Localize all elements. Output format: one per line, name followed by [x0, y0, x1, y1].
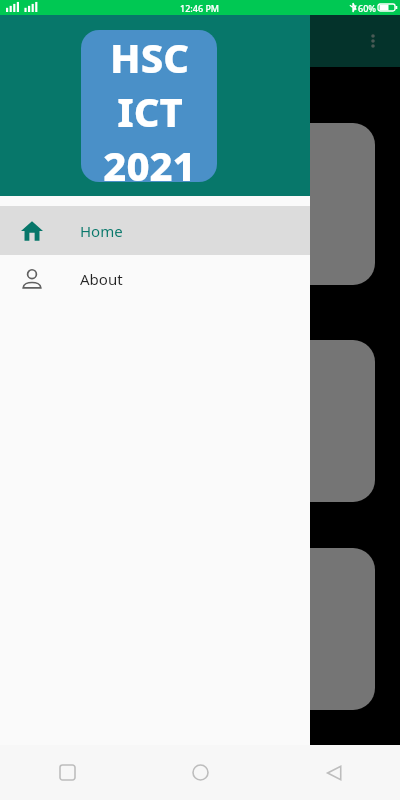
- button[interactable]: Card: [17, 123, 375, 285]
- staticText: 2021: [103, 138, 196, 182]
- button[interactable]: About: [0, 255, 310, 303]
- button[interactable]: More options: [356, 24, 390, 58]
- staticText: HSC: [110, 30, 189, 84]
- staticText: About: [80, 269, 123, 289]
- staticText: Home: [80, 221, 123, 241]
- staticText: 60%: [358, 2, 376, 14]
- button[interactable]: Card: [17, 548, 375, 710]
- button[interactable]: Home: [0, 206, 310, 255]
- button[interactable]: Recents: [0, 745, 134, 800]
- button[interactable]: Card: [17, 340, 375, 502]
- button[interactable]: Back: [267, 745, 400, 800]
- staticText: 12:46 PM: [180, 2, 220, 14]
- button[interactable]: Home: [134, 745, 267, 800]
- staticText: ICT: [117, 84, 183, 138]
